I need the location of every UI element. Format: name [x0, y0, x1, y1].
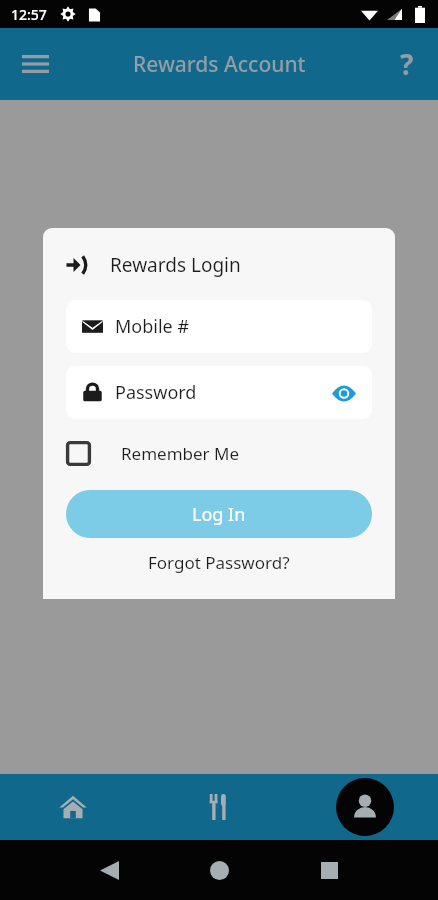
staticText: ? [400, 45, 414, 83]
button[interactable]: Food menu [146, 774, 292, 840]
button[interactable]: Forgot Password? [138, 546, 300, 579]
button[interactable]: Account [292, 774, 438, 840]
staticText: Remember Me [121, 442, 240, 465]
button[interactable]: Home [0, 774, 146, 840]
button[interactable]: Show password [329, 378, 359, 408]
button[interactable]: Log In [66, 490, 372, 538]
staticText: Log In [192, 502, 246, 527]
button[interactable]: Mobile # [66, 300, 372, 353]
button[interactable]: Remember Me [66, 441, 395, 466]
button[interactable]: Password [66, 366, 372, 419]
staticText: Rewards Login [110, 252, 241, 278]
staticText: Rewards Account [133, 50, 306, 79]
button[interactable]: Open navigation menu [12, 41, 58, 87]
staticText: Mobile # [115, 314, 190, 339]
staticText: Password [115, 380, 197, 405]
staticText: 12:57 [11, 5, 47, 24]
button[interactable]: Help [384, 41, 430, 87]
